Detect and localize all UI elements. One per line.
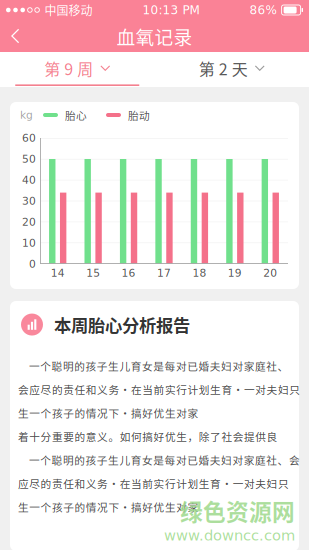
staticText: 30 bbox=[22, 195, 36, 207]
staticText: 绿色资源网 bbox=[180, 494, 295, 527]
staticText: 第 2 天 bbox=[199, 57, 248, 80]
staticText: 第 9 周 bbox=[44, 57, 93, 80]
staticText: 14 bbox=[51, 267, 65, 279]
staticText: 生一个孩子的情况下•搞好优生对家 bbox=[18, 499, 198, 514]
staticText: 50 bbox=[22, 153, 36, 165]
staticText: 胎心 bbox=[65, 107, 87, 123]
staticText: 40 bbox=[22, 174, 36, 186]
staticText: 10:13 PM bbox=[142, 3, 199, 17]
button[interactable]: Back bbox=[0, 20, 33, 52]
button[interactable]: 第 2 天 bbox=[154, 52, 309, 87]
staticText: 着十分重要的意义。如何搞好优生，除了社会提供良 bbox=[18, 429, 278, 444]
staticText: 20 bbox=[263, 267, 277, 279]
staticText: 胎动 bbox=[128, 107, 150, 123]
staticText: 15 bbox=[86, 267, 100, 279]
staticText: 10 bbox=[22, 237, 36, 249]
staticText: 生一个孩子的情况下•搞好优生对家 bbox=[18, 405, 198, 420]
staticText: 一个聪明的孩子生儿育女是每对已婚夫妇对家庭社、 bbox=[29, 358, 289, 373]
staticText: 应尽的责任和义务•在当前实行计划生育•一对夫妇只 bbox=[18, 476, 289, 491]
staticText: 中国移动 bbox=[44, 1, 92, 19]
staticText: 本周胎心分析报告 bbox=[54, 312, 190, 337]
staticText: 19 bbox=[228, 267, 242, 279]
staticText: 会应尽的责任和义务•在当前实行计划生育•一对夫妇只 bbox=[18, 382, 300, 397]
staticText: 18 bbox=[192, 267, 206, 279]
staticText: 0 bbox=[29, 258, 36, 270]
staticText: www.downcc.com bbox=[164, 527, 295, 544]
staticText: 血氧记录 bbox=[116, 22, 192, 49]
staticText: 60 bbox=[22, 132, 36, 144]
staticText: 17 bbox=[157, 267, 171, 279]
staticText: 一个聪明的孩子生儿育女是每对已婚夫妇对家庭社、会 bbox=[29, 452, 300, 467]
staticText: 16 bbox=[122, 267, 136, 279]
staticText: kg bbox=[20, 109, 33, 121]
staticText: 20 bbox=[22, 216, 36, 228]
button[interactable]: 第 9 周 bbox=[0, 52, 154, 87]
staticText: 86% bbox=[250, 3, 277, 17]
